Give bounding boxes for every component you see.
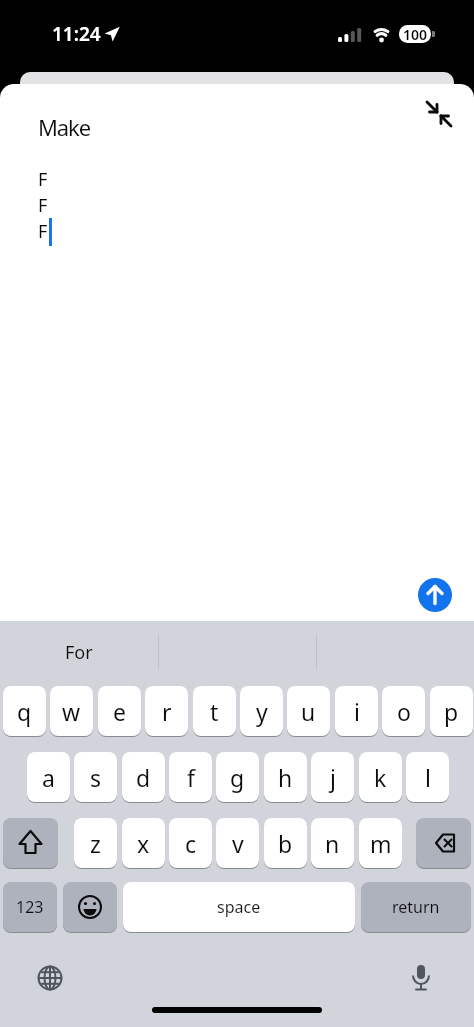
- button[interactable]: j: [311, 752, 354, 802]
- staticText: 123: [16, 896, 44, 918]
- staticText: p: [444, 696, 459, 727]
- button[interactable]: [407, 963, 435, 993]
- staticText: w: [62, 696, 81, 727]
- button[interactable]: r: [145, 686, 188, 736]
- button[interactable]: a: [27, 752, 70, 802]
- button[interactable]: e: [98, 686, 141, 736]
- staticText: m: [370, 828, 392, 859]
- staticText: f: [187, 762, 195, 793]
- staticText: t: [210, 696, 219, 727]
- button[interactable]: [63, 882, 117, 932]
- button[interactable]: z: [74, 818, 117, 868]
- staticText: r: [162, 696, 172, 727]
- button[interactable]: [36, 964, 64, 992]
- staticText: u: [301, 696, 316, 727]
- button[interactable]: k: [359, 752, 402, 802]
- staticText: a: [42, 762, 55, 793]
- button[interactable]: v: [216, 818, 259, 868]
- staticText: y: [256, 696, 268, 727]
- button[interactable]: n: [311, 818, 354, 868]
- staticText: q: [17, 696, 32, 727]
- button[interactable]: q: [3, 686, 46, 736]
- button[interactable]: i: [335, 686, 378, 736]
- button[interactable]: f: [169, 752, 212, 802]
- staticText: Make: [38, 112, 91, 142]
- staticText: d: [136, 762, 151, 793]
- button[interactable]: m: [359, 818, 402, 868]
- button[interactable]: h: [264, 752, 307, 802]
- staticText: e: [113, 696, 126, 727]
- staticText: c: [185, 828, 197, 859]
- button[interactable]: 123: [3, 882, 57, 932]
- staticText: z: [90, 828, 101, 859]
- button[interactable]: [416, 818, 471, 868]
- staticText: F F F: [38, 167, 48, 244]
- button[interactable]: t: [193, 686, 236, 736]
- button[interactable]: space: [123, 882, 355, 932]
- button[interactable]: y: [240, 686, 283, 736]
- button[interactable]: w: [50, 686, 93, 736]
- button[interactable]: p: [430, 686, 473, 736]
- staticText: j: [330, 762, 336, 793]
- staticText: s: [90, 762, 102, 793]
- staticText: x: [137, 828, 150, 859]
- button[interactable]: g: [216, 752, 259, 802]
- button[interactable]: s: [74, 752, 117, 802]
- staticText: l: [425, 762, 431, 793]
- button[interactable]: return: [361, 882, 471, 932]
- button[interactable]: b: [264, 818, 307, 868]
- button[interactable]: c: [169, 818, 212, 868]
- staticText: n: [325, 828, 340, 859]
- staticText: v: [232, 828, 244, 859]
- staticText: b: [278, 828, 293, 859]
- button[interactable]: [3, 818, 58, 868]
- staticText: return: [392, 896, 440, 918]
- button[interactable]: [418, 578, 452, 612]
- staticText: k: [374, 762, 387, 793]
- staticText: i: [354, 696, 360, 727]
- button[interactable]: d: [122, 752, 165, 802]
- staticText: space: [217, 896, 261, 918]
- staticText: 11:24: [52, 21, 101, 47]
- button[interactable]: [420, 98, 456, 134]
- staticText: For: [65, 640, 93, 665]
- button[interactable]: l: [406, 752, 449, 802]
- button[interactable]: x: [122, 818, 165, 868]
- staticText: h: [278, 762, 293, 793]
- button[interactable]: u: [287, 686, 330, 736]
- staticText: 100: [403, 25, 428, 43]
- staticText: o: [397, 696, 411, 727]
- staticText: g: [230, 762, 245, 793]
- button[interactable]: o: [382, 686, 425, 736]
- button[interactable]: For: [0, 621, 158, 683]
